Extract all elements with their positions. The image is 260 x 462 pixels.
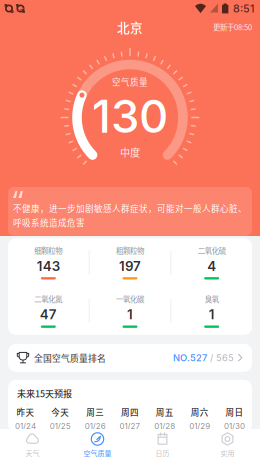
- staticText: 更新于08:50: [213, 22, 252, 32]
- staticText: 01/26: [85, 421, 106, 431]
- button[interactable]: 空气质量: [65, 428, 130, 462]
- staticText: 二氧化硫: [198, 245, 226, 256]
- staticText: 实用: [220, 448, 234, 458]
- staticText: 1: [209, 306, 215, 322]
- staticText: 臭氧: [205, 293, 219, 304]
- staticText: 中度: [120, 145, 140, 159]
- staticText: 空气质量: [112, 76, 148, 88]
- staticText: 01/24: [15, 421, 36, 431]
- staticText: 不健康，进一步加剧敏感人群症状，可能对一般人群心脏、: [13, 202, 247, 214]
- staticText: NO.527: [173, 352, 207, 363]
- staticText: 昨天: [16, 406, 34, 418]
- staticText: 一氧化碳: [116, 293, 144, 304]
- staticText: 周四: [121, 406, 139, 418]
- staticText: 01/25: [50, 421, 71, 431]
- button[interactable]: 全国空气质量排名: [8, 344, 252, 372]
- staticText: 未来15天预报: [17, 387, 72, 400]
- staticText: 周日: [226, 406, 244, 418]
- staticText: 呼吸系统造成危害: [13, 216, 85, 229]
- staticText: 粗颗粒物: [116, 245, 144, 256]
- staticText: 天气: [25, 448, 39, 458]
- staticText: 今天: [51, 406, 69, 418]
- button[interactable]: 更新于08:50: [213, 18, 260, 36]
- staticText: 空气质量: [83, 448, 111, 458]
- staticText: 周三: [86, 406, 104, 418]
- staticText: 周六: [191, 406, 209, 418]
- staticText: 周五: [156, 406, 174, 418]
- staticText: 北京: [117, 18, 143, 36]
- staticText: 细颗粒物: [34, 245, 62, 256]
- staticText: 01/29: [189, 421, 210, 431]
- staticText: 1: [127, 306, 133, 322]
- staticText: 日历: [155, 448, 169, 458]
- staticText: 130: [92, 89, 168, 144]
- staticText: 01/27: [119, 421, 140, 431]
- staticText: 4: [207, 258, 216, 274]
- staticText: / 565: [207, 352, 234, 363]
- staticText: 全国空气质量排名: [34, 351, 106, 364]
- staticText: 197: [119, 258, 141, 274]
- staticText: 01/28: [154, 421, 175, 431]
- staticText: 8:51: [233, 2, 254, 15]
- staticText: 01/30: [224, 421, 245, 431]
- button[interactable]: 实用: [195, 428, 260, 462]
- button[interactable]: 天气: [0, 428, 65, 462]
- staticText: 143: [37, 258, 60, 274]
- staticText: 47: [40, 306, 57, 322]
- staticText: 二氧化氮: [34, 293, 62, 304]
- button[interactable]: 日历: [130, 428, 195, 462]
